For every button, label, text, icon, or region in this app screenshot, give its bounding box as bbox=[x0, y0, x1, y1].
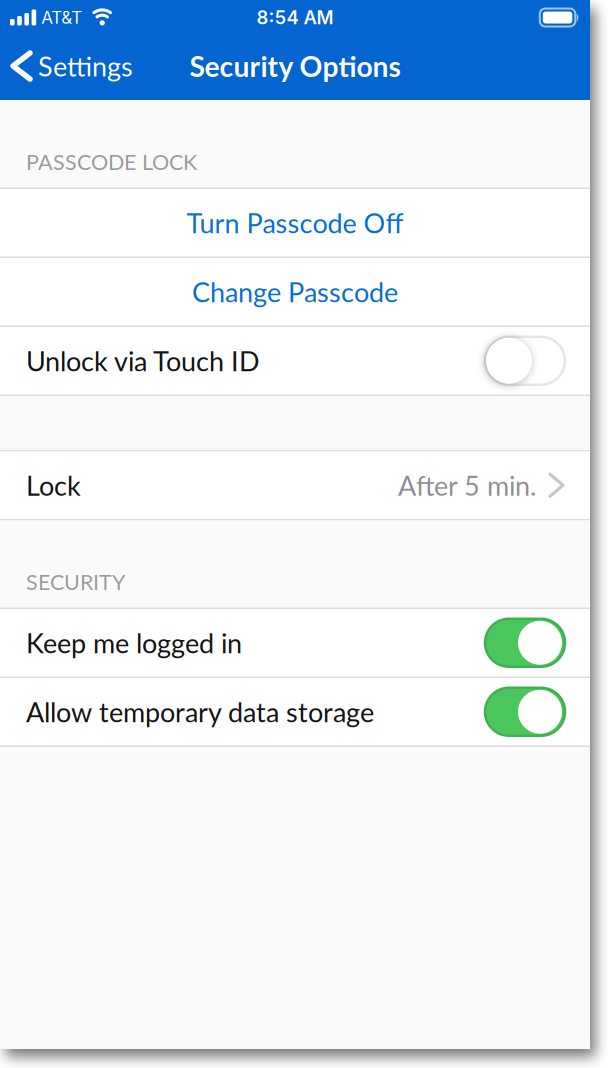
staticText: Security Options bbox=[189, 49, 400, 83]
staticText: After 5 min. bbox=[398, 469, 536, 501]
staticText: 8:54 AM bbox=[256, 6, 333, 29]
button[interactable]: Allow temporary data storage bbox=[0, 678, 590, 745]
staticText: Lock bbox=[26, 469, 81, 501]
button[interactable]: Lock bbox=[0, 451, 590, 519]
staticText: Settings bbox=[38, 50, 133, 82]
staticText: Keep me logged in bbox=[26, 626, 242, 659]
button[interactable]: Unlock via Touch ID bbox=[0, 327, 590, 394]
button[interactable]: Keep me logged in bbox=[0, 609, 590, 676]
staticText: Change Passcode bbox=[192, 275, 398, 308]
staticText: Turn Passcode Off bbox=[186, 206, 403, 239]
staticText: AT&T bbox=[41, 7, 82, 28]
button[interactable]: Change Passcode bbox=[0, 258, 590, 325]
staticText: SECURITY bbox=[26, 569, 125, 594]
staticText: Allow temporary data storage bbox=[26, 695, 374, 728]
button[interactable]: Turn Passcode Off bbox=[0, 189, 590, 256]
staticText: Unlock via Touch ID bbox=[26, 344, 260, 377]
staticText: PASSCODE LOCK bbox=[26, 149, 197, 174]
button[interactable]: Back to Settings bbox=[0, 50, 133, 82]
